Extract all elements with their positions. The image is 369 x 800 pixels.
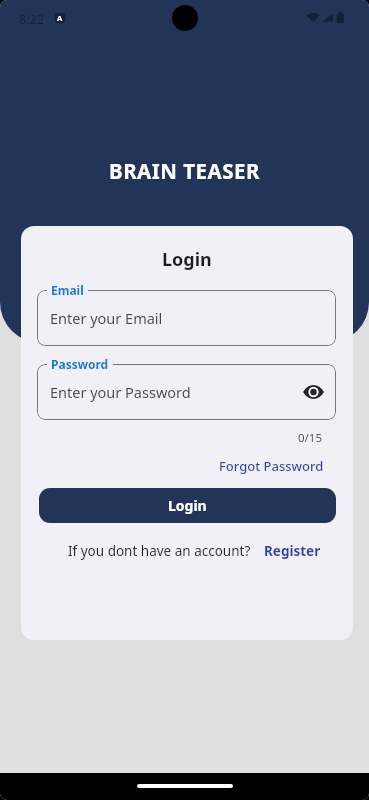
staticText: 0/15: [298, 430, 323, 446]
staticText: Password: [51, 356, 109, 372]
staticText: Enter your Password: [50, 382, 191, 402]
button[interactable]: Forgot Password: [219, 457, 324, 475]
staticText: 8:22: [19, 11, 44, 28]
staticText: If you dont have an account?: [68, 542, 251, 560]
staticText: Enter your Email: [50, 308, 163, 328]
button[interactable]: Enter your Email: [37, 290, 336, 346]
staticText: Login: [168, 496, 207, 515]
staticText: Email: [51, 282, 84, 298]
staticText: A: [57, 13, 63, 23]
button[interactable]: Login: [39, 488, 336, 523]
staticText: Login: [162, 247, 212, 272]
button[interactable]: Enter your Password: [37, 364, 336, 420]
button[interactable]: [303, 385, 324, 399]
button[interactable]: Register: [264, 542, 321, 560]
staticText: BRAIN TEASER: [0, 157, 369, 185]
